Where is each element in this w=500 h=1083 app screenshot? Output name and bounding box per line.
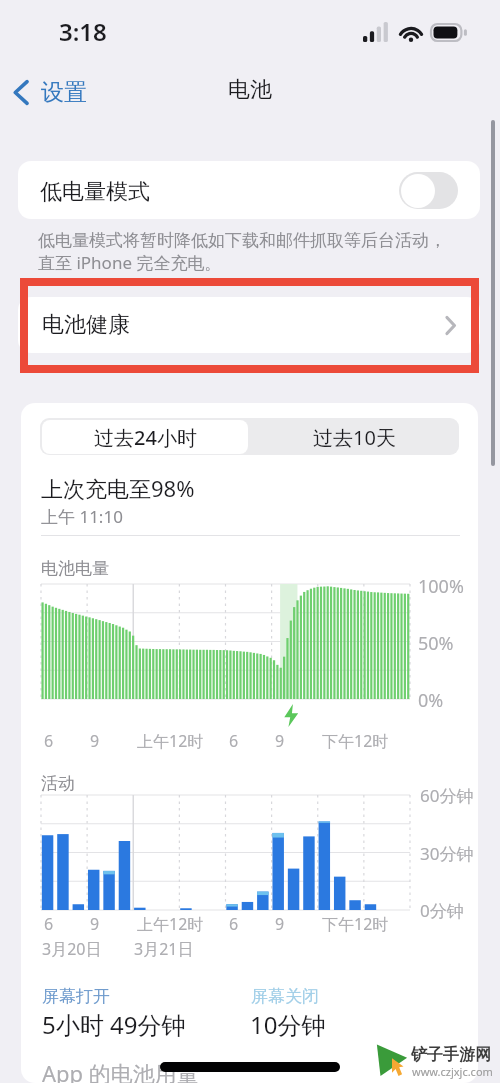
staticText: 屏幕打开 xyxy=(42,986,110,1007)
other: Open Battery Health xyxy=(445,316,456,335)
staticText: 直至 iPhone 完全充电。 xyxy=(38,251,222,274)
staticText: 设置 xyxy=(41,78,87,107)
button[interactable]: 设置 xyxy=(6,62,97,122)
staticText: 9 xyxy=(275,913,285,935)
staticText: 上午12时 xyxy=(137,730,204,752)
staticText: 电池电量 xyxy=(41,558,109,579)
staticText: 低电量模式 xyxy=(40,178,150,206)
staticText: 屏幕关闭 xyxy=(251,986,319,1007)
button[interactable]: 低电量模式 xyxy=(18,161,480,219)
staticText: 电池健康 xyxy=(42,311,130,339)
staticText: 60分钟 xyxy=(420,784,474,807)
staticText: 9 xyxy=(275,730,285,752)
staticText: 活动 xyxy=(41,773,75,794)
button[interactable]: 过去10天 xyxy=(251,420,457,454)
staticText: 0% xyxy=(418,688,444,713)
button[interactable]: Low Power Mode toggle xyxy=(399,172,458,209)
staticText: www.czjxjc.com xyxy=(412,1064,493,1079)
staticText: 3:18 xyxy=(59,15,107,48)
staticText: 100% xyxy=(418,574,464,599)
staticText: 铲子手游网 xyxy=(411,1045,491,1065)
staticText: 低电量模式将暂时降低如下载和邮件抓取等后台活动， xyxy=(38,230,446,251)
staticText: 电池 xyxy=(228,76,272,104)
button[interactable]: 电池健康 xyxy=(18,297,480,353)
staticText: 10分钟 xyxy=(250,1008,326,1041)
staticText: 3月21日 xyxy=(134,938,194,960)
staticText: 上午 11:10 xyxy=(41,505,123,528)
staticText: App 的电池用量 xyxy=(42,1058,199,1083)
staticText: 上午12时 xyxy=(137,913,204,935)
staticText: 上次充电至98% xyxy=(41,473,195,503)
staticText: 6 xyxy=(229,913,239,935)
staticText: 9 xyxy=(90,913,100,935)
staticText: 6 xyxy=(44,913,54,935)
staticText: 0分钟 xyxy=(420,899,464,922)
staticText: 5小时 49分钟 xyxy=(42,1008,186,1041)
staticText: 过去10天 xyxy=(313,424,396,451)
button[interactable]: 过去24小时 xyxy=(42,420,248,454)
staticText: 6 xyxy=(229,730,239,752)
staticText: 过去24小时 xyxy=(94,424,197,451)
staticText: 下午12时 xyxy=(322,730,389,752)
staticText: 9 xyxy=(90,730,100,752)
staticText: 50% xyxy=(418,631,454,656)
staticText: 3月20日 xyxy=(42,938,102,960)
staticText: 下午12时 xyxy=(322,913,389,935)
staticText: 6 xyxy=(44,730,54,752)
staticText: 30分钟 xyxy=(420,842,474,865)
